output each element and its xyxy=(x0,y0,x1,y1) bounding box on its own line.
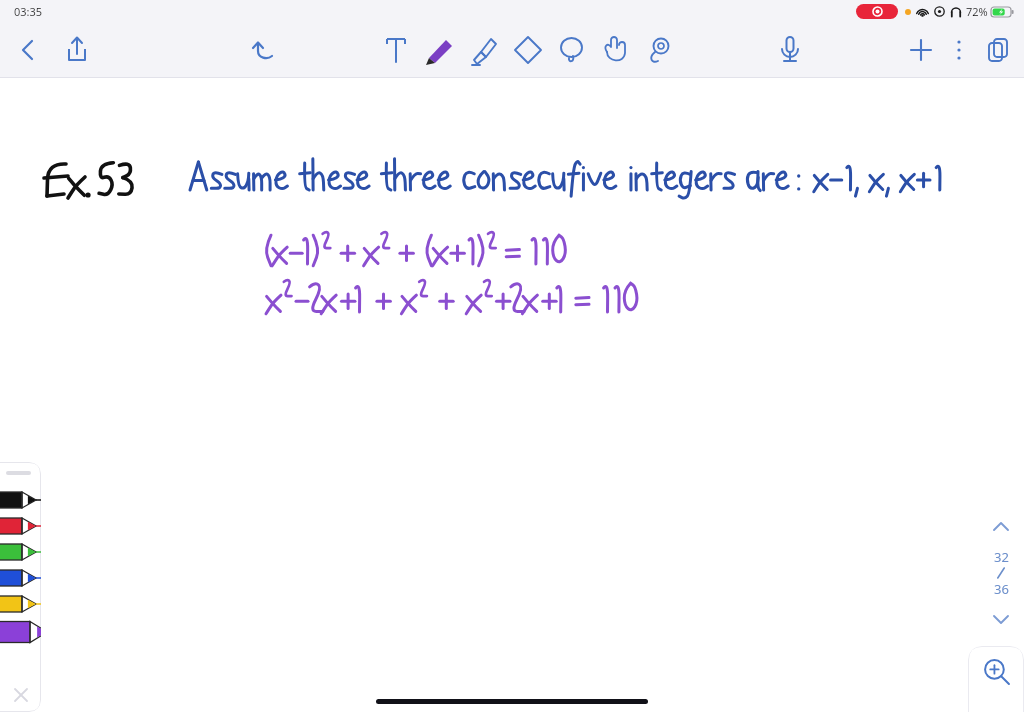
button[interactable]: Close palette xyxy=(0,678,41,712)
button[interactable]: Undo xyxy=(246,31,284,69)
button[interactable]: Colour xyxy=(0,591,41,617)
button[interactable]: Colour xyxy=(0,565,41,591)
button[interactable]: Pen xyxy=(422,32,458,68)
button[interactable]: Share xyxy=(58,31,96,69)
button[interactable]: Colour xyxy=(0,617,41,647)
button[interactable]: Zoom tool xyxy=(642,32,678,68)
button[interactable]: Hand tool xyxy=(598,32,634,68)
button[interactable]: Eraser xyxy=(510,32,546,68)
button[interactable]: Colour xyxy=(0,487,41,513)
staticText: 32 xyxy=(994,548,1009,566)
button[interactable]: Text tool xyxy=(378,32,414,68)
button[interactable]: Previous page xyxy=(984,510,1018,544)
button[interactable]: Pages xyxy=(978,31,1016,69)
staticText: 03:35 xyxy=(14,4,43,19)
button[interactable]: Back xyxy=(8,31,46,69)
button[interactable]: Record audio xyxy=(771,31,809,69)
button[interactable]: Colour xyxy=(0,539,41,565)
button[interactable]: Next page xyxy=(984,602,1018,636)
staticText: 72% xyxy=(966,4,988,19)
button[interactable]: More options xyxy=(944,35,974,65)
button[interactable]: Highlighter xyxy=(466,32,502,68)
button[interactable]: Zoom xyxy=(968,646,1024,712)
staticText: 36 xyxy=(994,580,1009,598)
button[interactable]: Add xyxy=(902,31,940,69)
button[interactable]: Colour xyxy=(0,513,41,539)
button[interactable]: Lasso select xyxy=(554,32,590,68)
